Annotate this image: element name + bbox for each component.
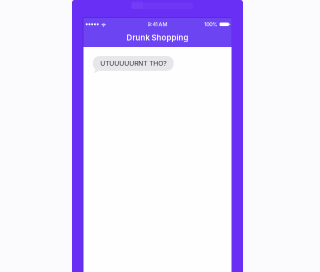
- staticText: 100%: [204, 21, 217, 28]
- staticText: Drunk Shopping: [126, 33, 188, 42]
- staticText: 9:41 AM: [147, 21, 167, 28]
- staticText: UTUUUUURNT THO?: [100, 59, 166, 67]
